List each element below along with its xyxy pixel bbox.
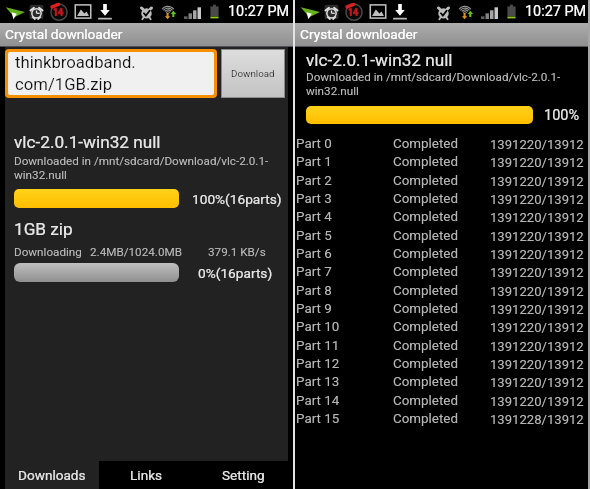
other: 14 notifications bbox=[345, 3, 363, 20]
staticText: 1391220/13912 bbox=[490, 302, 584, 317]
staticText: Completed bbox=[393, 191, 459, 207]
staticText: 1391220/13912 bbox=[490, 357, 584, 372]
button[interactable]: Part 13 bbox=[295, 373, 590, 391]
other: Navigation active bbox=[300, 5, 320, 19]
button[interactable]: Part 15 bbox=[295, 410, 590, 428]
staticText: Completed bbox=[393, 154, 459, 170]
staticText: Part 6 bbox=[296, 246, 332, 262]
staticText: Part 0 bbox=[296, 136, 332, 152]
staticText: Part 13 bbox=[296, 374, 340, 390]
staticText: Completed bbox=[393, 246, 459, 262]
staticText: Completed bbox=[393, 393, 459, 409]
staticText: Completed bbox=[393, 301, 459, 317]
other: Navigation active bbox=[5, 5, 25, 19]
staticText: 1391220/13912 bbox=[490, 229, 584, 244]
button[interactable]: 1GB zip bbox=[0, 208, 293, 282]
staticText: 1391220/13912 bbox=[490, 339, 584, 354]
other: Screenshot captured bbox=[369, 4, 387, 19]
button[interactable]: Part 5 bbox=[295, 227, 590, 245]
staticText: 1391220/13912 bbox=[490, 247, 584, 262]
staticText: Completed bbox=[393, 264, 459, 280]
staticText: Part 4 bbox=[296, 209, 332, 225]
staticText: Crystal downloader bbox=[300, 26, 418, 42]
staticText: 0%(16parts) bbox=[198, 265, 273, 281]
staticText: Part 10 bbox=[296, 319, 340, 335]
button[interactable]: Links bbox=[99, 461, 194, 489]
staticText: 1391220/13912 bbox=[490, 192, 584, 207]
staticText: Completed bbox=[393, 209, 459, 225]
button[interactable]: Part 0 bbox=[295, 135, 590, 153]
staticText: Part 14 bbox=[296, 393, 340, 409]
staticText: Part 1 bbox=[296, 154, 332, 170]
staticText: 1391220/13912 bbox=[490, 210, 584, 225]
button[interactable]: Part 3 bbox=[295, 190, 590, 208]
staticText: Links bbox=[130, 467, 163, 483]
button[interactable]: Part 8 bbox=[295, 282, 590, 300]
staticText: Completed bbox=[393, 136, 459, 152]
staticText: 1391220/13912 bbox=[490, 265, 584, 280]
staticText: Part 7 bbox=[296, 264, 332, 280]
staticText: Completed bbox=[393, 228, 459, 244]
staticText: 1GB zip bbox=[14, 219, 73, 239]
staticText: Part 9 bbox=[296, 301, 332, 317]
staticText: 10:27 PM bbox=[525, 3, 587, 20]
staticText: 1391220/13912 bbox=[490, 284, 584, 299]
staticText: Part 15 bbox=[296, 411, 340, 427]
staticText: 1391220/13912 bbox=[490, 320, 584, 335]
button[interactable]: vlc-2.0.1-win32 null bbox=[0, 103, 293, 208]
staticText: Completed bbox=[393, 283, 459, 299]
button[interactable]: Part 1 bbox=[295, 153, 590, 171]
staticText: Crystal downloader bbox=[5, 26, 123, 42]
staticText: 1391220/13912 bbox=[490, 137, 584, 152]
staticText: 100% bbox=[544, 107, 580, 124]
staticText: Completed bbox=[393, 356, 459, 372]
button[interactable]: Part 4 bbox=[295, 208, 590, 226]
staticText: Completed bbox=[393, 338, 459, 354]
staticText: 10:27 PM bbox=[228, 3, 290, 20]
staticText: 1391220/13912 bbox=[490, 394, 584, 409]
staticText: Part 11 bbox=[296, 338, 340, 354]
button[interactable]: Part 9 bbox=[295, 300, 590, 318]
button[interactable]: Download bbox=[222, 50, 284, 97]
staticText: Completed bbox=[393, 173, 459, 189]
staticText: 100%(16parts) bbox=[192, 191, 282, 207]
button[interactable]: Part 14 bbox=[295, 392, 590, 410]
staticText: Downloads bbox=[18, 467, 86, 483]
button[interactable]: Part 11 bbox=[295, 337, 590, 355]
staticText: thinkbroadband. com/1GB.zip bbox=[15, 53, 136, 94]
staticText: Part 3 bbox=[296, 191, 332, 207]
staticText: 1391220/13912 bbox=[490, 375, 584, 390]
staticText: vlc-2.0.1-win32 null bbox=[14, 132, 161, 152]
staticText: 1391228/13912 bbox=[490, 412, 584, 427]
staticText: Setting bbox=[222, 467, 265, 483]
button[interactable]: thinkbroadband. com/1GB.zip bbox=[8, 52, 214, 95]
staticText: Downloaded in /mnt/sdcard/Download/vlc-2… bbox=[306, 70, 561, 98]
button[interactable]: Part 7 bbox=[295, 263, 590, 281]
staticText: Downloaded in /mnt/sdcard/Download/vlc-2… bbox=[14, 154, 269, 182]
button[interactable]: Part 12 bbox=[295, 355, 590, 373]
staticText: Completed bbox=[393, 411, 459, 427]
button[interactable]: Part 6 bbox=[295, 245, 590, 263]
other: Download in progress bbox=[98, 4, 112, 20]
staticText: Part 12 bbox=[296, 356, 340, 372]
other: Download in progress bbox=[393, 4, 407, 20]
button[interactable]: Setting bbox=[194, 461, 293, 489]
button[interactable]: Part 10 bbox=[295, 318, 590, 336]
other: Alarm set bbox=[29, 4, 44, 20]
button[interactable]: Downloads bbox=[5, 461, 99, 489]
other: Screenshot captured bbox=[74, 4, 92, 19]
staticText: 2.4MB/1024.0MB bbox=[90, 245, 182, 259]
staticText: 379.1 KB/s bbox=[208, 245, 266, 259]
staticText: Part 2 bbox=[296, 173, 332, 189]
staticText: Part 8 bbox=[296, 283, 332, 299]
staticText: Completed bbox=[393, 374, 459, 390]
staticText: vlc-2.0.1-win32 null bbox=[306, 50, 453, 70]
staticText: Part 5 bbox=[296, 228, 332, 244]
other: 14 notifications bbox=[50, 3, 68, 20]
staticText: Download bbox=[231, 68, 275, 79]
staticText: 1391220/13912 bbox=[490, 174, 584, 189]
staticText: 1391220/13912 bbox=[490, 155, 584, 170]
other: Alarm set bbox=[324, 4, 339, 20]
staticText: Completed bbox=[393, 319, 459, 335]
button[interactable]: Part 2 bbox=[295, 172, 590, 190]
